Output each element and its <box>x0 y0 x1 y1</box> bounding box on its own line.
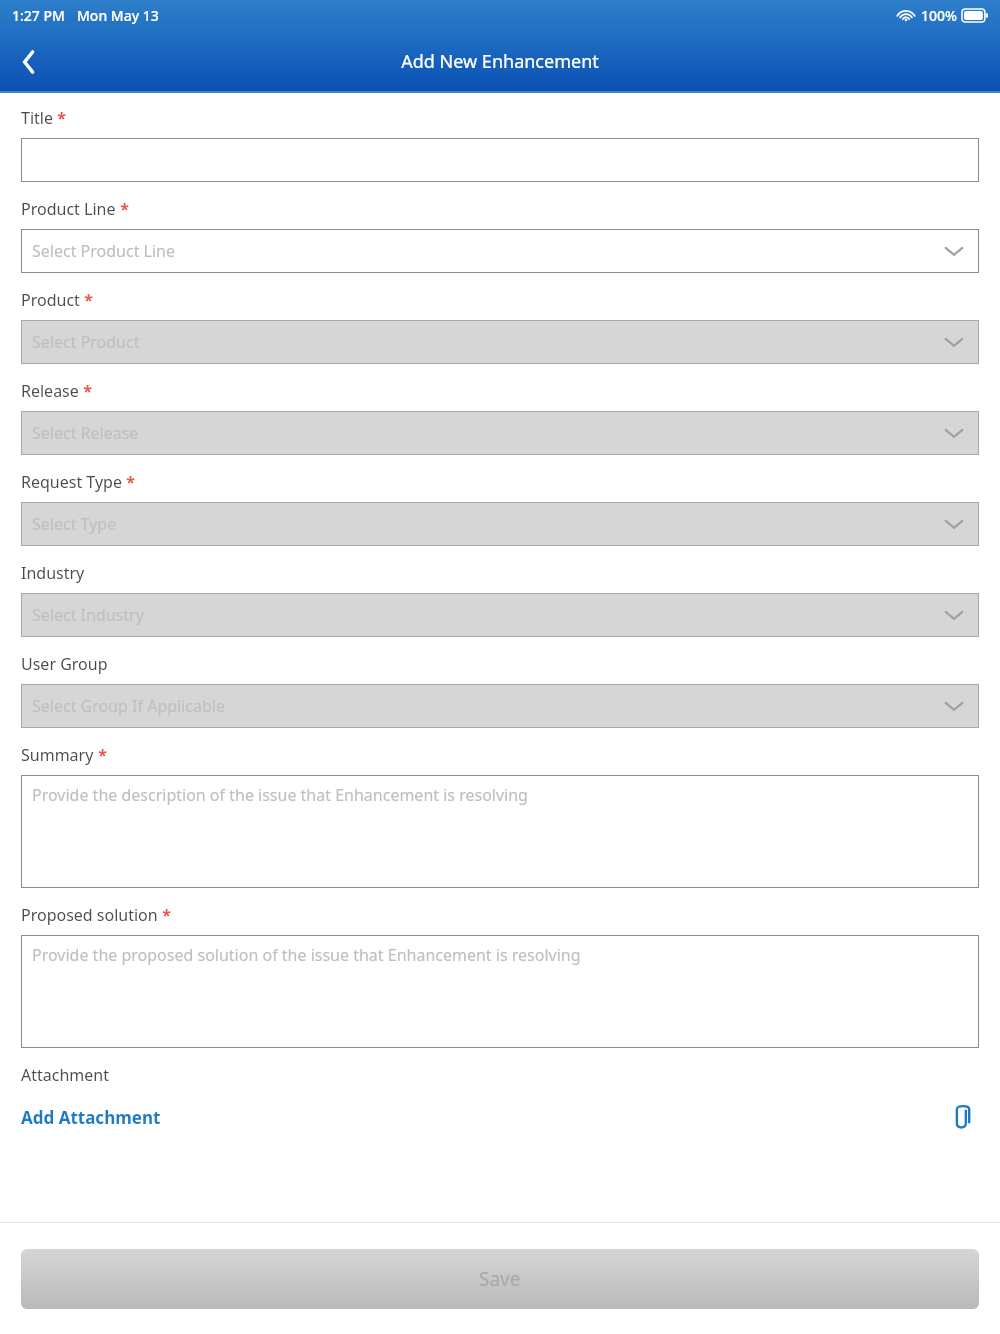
button[interactable]: Back <box>0 34 56 90</box>
staticText: * <box>94 744 107 766</box>
staticText: Title <box>21 107 53 129</box>
staticText: Select Industry <box>32 604 144 626</box>
staticText: Add New Enhancement <box>401 49 599 74</box>
button[interactable]: Select Industry <box>21 593 979 637</box>
staticText: Provide the description of the issue tha… <box>32 784 528 806</box>
staticText: Attachment <box>21 1064 109 1086</box>
button[interactable]: Select Group If Applicable <box>21 684 979 728</box>
button[interactable]: Select Product Line <box>21 229 979 273</box>
staticText: User Group <box>21 653 108 675</box>
staticText: * <box>122 471 135 493</box>
staticText: Product <box>21 289 80 311</box>
staticText: Mon May 13 <box>77 6 159 25</box>
staticText: Select Group If Applicable <box>32 695 225 717</box>
staticText: Select Type <box>32 513 117 535</box>
staticText: Select Release <box>32 422 139 444</box>
staticText: Add Attachment <box>21 1106 161 1129</box>
staticText: * <box>158 904 171 926</box>
staticText: 1:27 PM <box>12 6 65 25</box>
staticText: Provide the proposed solution of the iss… <box>32 944 581 966</box>
staticText: * <box>53 107 66 129</box>
staticText: * <box>80 289 93 311</box>
staticText: Release <box>21 380 79 402</box>
staticText: Industry <box>21 562 85 584</box>
button[interactable]: Save <box>21 1249 979 1309</box>
staticText: Select Product Line <box>32 240 175 262</box>
button[interactable]: Provide the proposed solution of the iss… <box>21 935 979 1048</box>
button[interactable]: Attach file <box>945 1100 979 1134</box>
button[interactable]: Select Product <box>21 320 979 364</box>
staticText: Save <box>479 1266 521 1292</box>
button[interactable]: Provide the description of the issue tha… <box>21 775 979 888</box>
button[interactable]: Select Release <box>21 411 979 455</box>
staticText: Select Product <box>32 331 140 353</box>
button[interactable]: Select Type <box>21 502 979 546</box>
button[interactable]: Add Attachment <box>21 1106 161 1129</box>
button[interactable] <box>21 138 979 182</box>
staticText: Product Line <box>21 198 116 220</box>
staticText: 100% <box>921 6 957 25</box>
staticText: * <box>79 380 92 402</box>
staticText: * <box>116 198 129 220</box>
staticText: Request Type <box>21 471 122 493</box>
staticText: Proposed solution <box>21 904 158 926</box>
staticText: Summary <box>21 744 94 766</box>
